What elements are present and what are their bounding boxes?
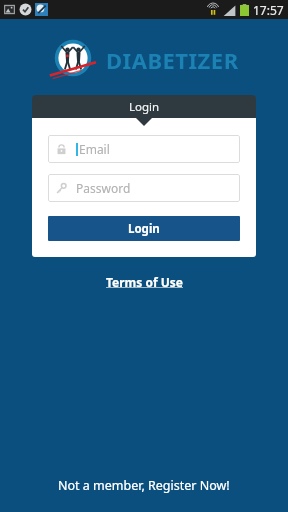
button[interactable]: Terms of Use	[98, 271, 191, 293]
button[interactable]: Login	[48, 216, 240, 241]
staticText: Not a member, Register Now!	[58, 477, 230, 494]
staticText: DIABETIZER	[106, 45, 239, 75]
staticText: Email	[79, 141, 110, 157]
button[interactable]: Not a member, Register Now!	[48, 473, 240, 498]
staticText: Password	[76, 180, 131, 196]
staticText: Terms of Use	[106, 274, 183, 290]
staticText: 17:57	[253, 2, 284, 18]
button[interactable]: Password	[48, 174, 240, 202]
staticText: Login	[128, 221, 160, 237]
staticText: Login	[129, 99, 160, 115]
button[interactable]: Email	[48, 135, 240, 163]
